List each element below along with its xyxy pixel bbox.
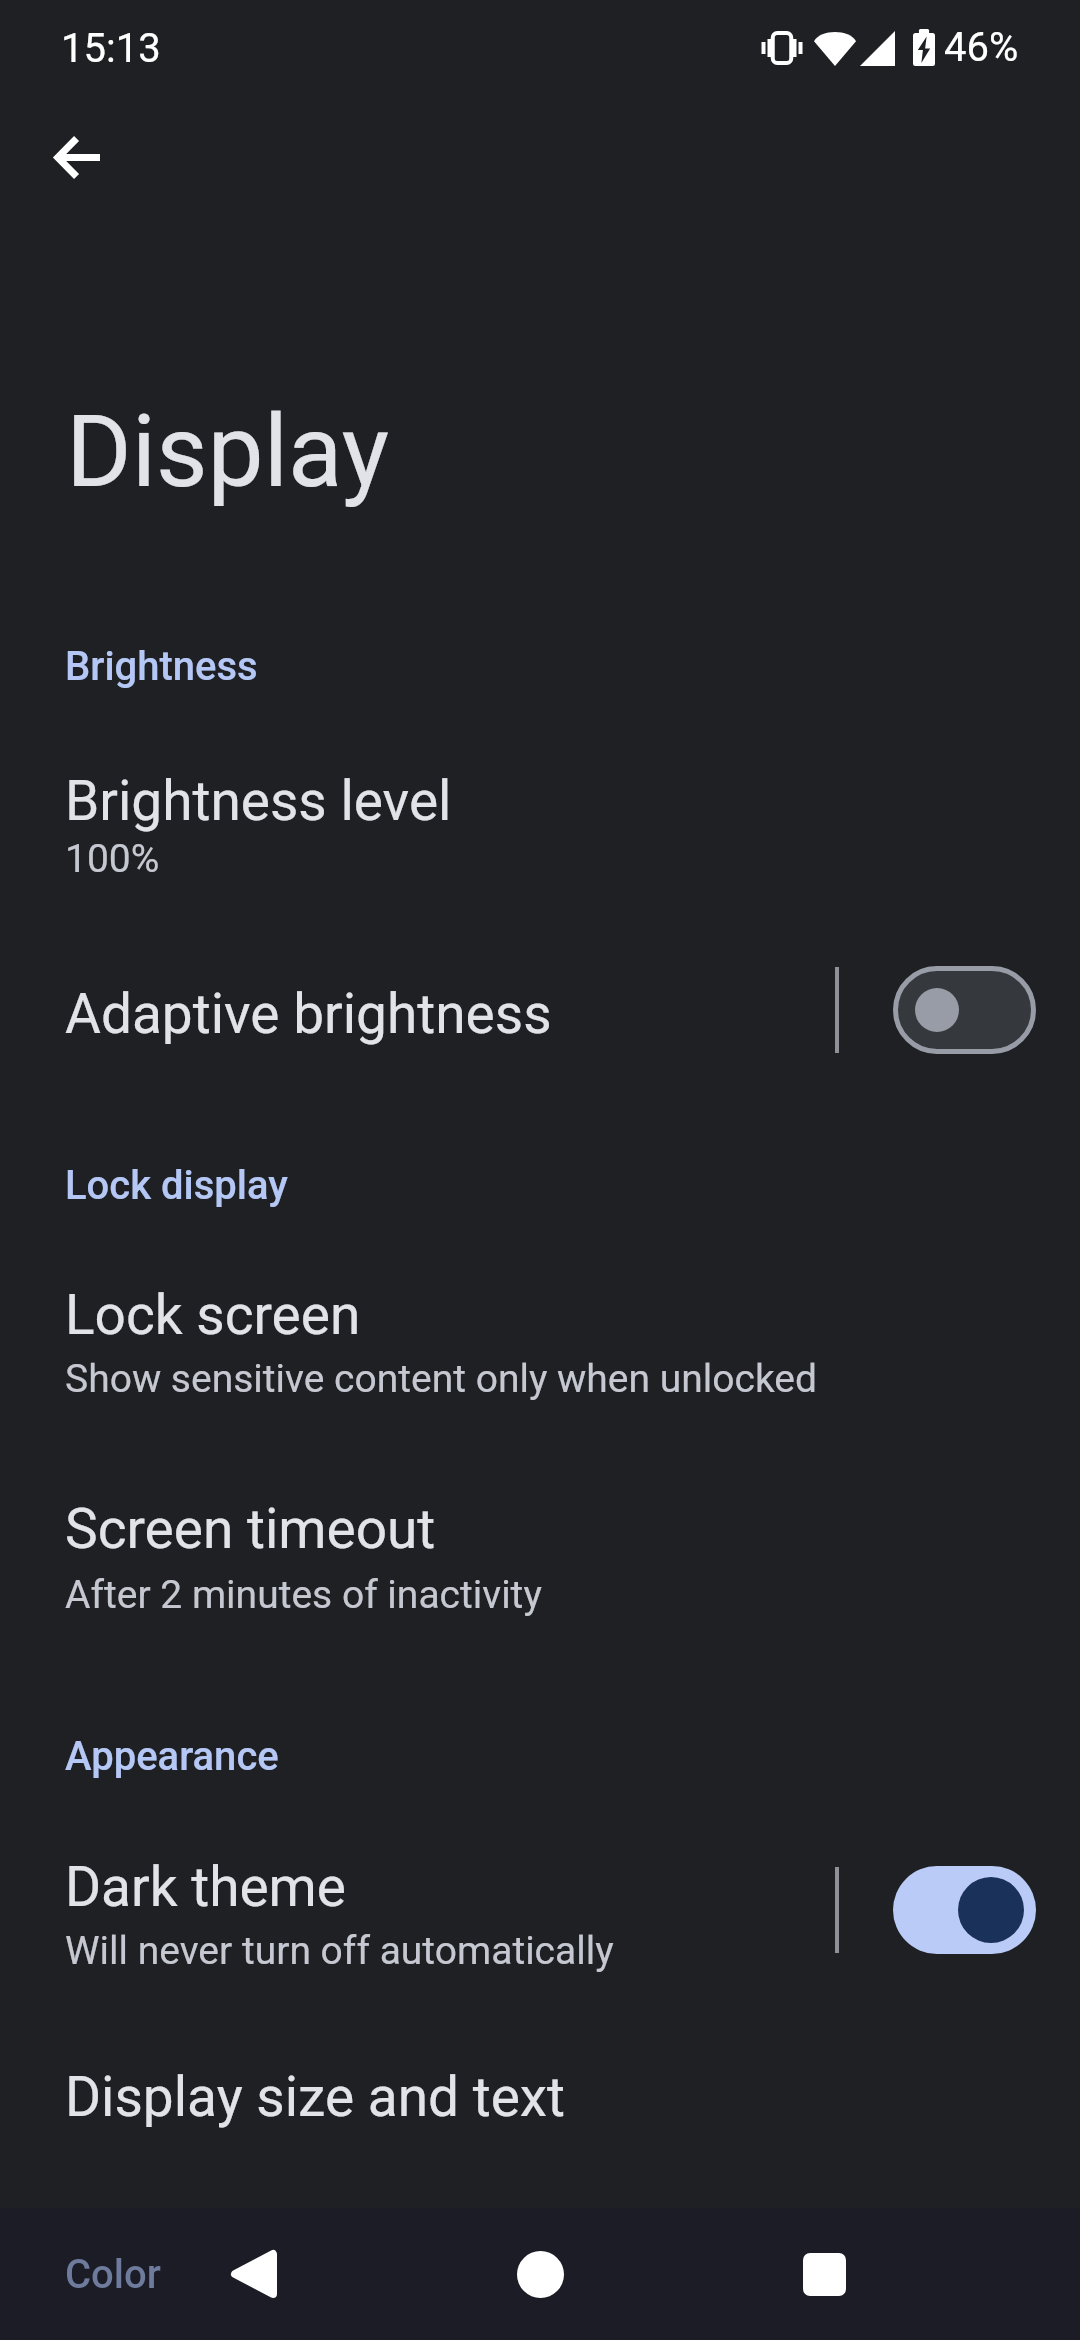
staticText: Screen timeout	[65, 1497, 436, 1561]
button[interactable]: Adaptive brightness	[839, 940, 1080, 1080]
staticText: Dark theme	[65, 1855, 347, 1919]
button[interactable]	[0, 1820, 835, 2000]
button[interactable]: Dark theme	[839, 1820, 1080, 2000]
staticText: 100%	[65, 836, 160, 882]
staticText: Appearance	[65, 1733, 279, 1780]
staticText: 46%	[944, 24, 1019, 71]
button[interactable]: Recent apps	[749, 2208, 899, 2340]
staticText: Brightness level	[65, 769, 452, 833]
staticText: Will never turn off automatically	[65, 1928, 614, 1974]
button[interactable]	[0, 2035, 1080, 2180]
button[interactable]: Back	[179, 2208, 329, 2340]
staticText: After 2 minutes of inactivity	[65, 1572, 542, 1618]
staticText: Lock display	[65, 1162, 288, 1209]
staticText: Display	[66, 393, 389, 510]
staticText: 15:13	[61, 25, 161, 72]
staticText: Color	[65, 2251, 161, 2298]
staticText: Lock screen	[65, 1283, 361, 1347]
staticText: Display size and text	[65, 2065, 566, 2129]
button[interactable]: Home	[465, 2208, 615, 2340]
staticText: Show sensitive content only when unlocke…	[65, 1356, 817, 1402]
button[interactable]	[0, 1455, 1080, 1640]
button[interactable]: Navigate up	[43, 123, 111, 191]
staticText: Adaptive brightness	[65, 982, 552, 1046]
button[interactable]	[0, 940, 835, 1080]
button[interactable]	[0, 1240, 1080, 1420]
button[interactable]	[0, 718, 1080, 900]
staticText: Brightness	[65, 643, 258, 690]
